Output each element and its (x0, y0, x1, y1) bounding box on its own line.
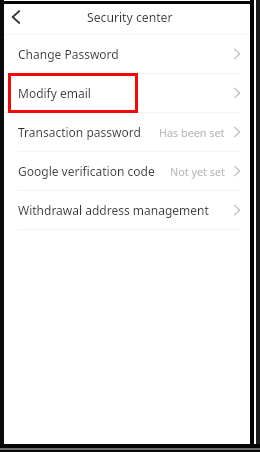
button[interactable]: Change Password (4, 35, 250, 73)
button[interactable]: Modify email (4, 74, 250, 112)
staticText: Not yet set (170, 164, 225, 179)
staticText: Google verification code (18, 163, 155, 179)
staticText: Withdrawal address management (18, 202, 209, 218)
staticText: Modify email (18, 85, 91, 101)
staticText: Has been set (159, 125, 225, 140)
staticText: Security center (87, 9, 173, 26)
button[interactable]: Google verification code (4, 152, 250, 190)
button[interactable]: Transaction password (4, 113, 250, 151)
staticText: Transaction password (18, 124, 141, 140)
button[interactable]: Withdrawal address management (4, 191, 250, 229)
staticText: Change Password (18, 46, 119, 62)
button[interactable]: Back (5, 6, 27, 28)
